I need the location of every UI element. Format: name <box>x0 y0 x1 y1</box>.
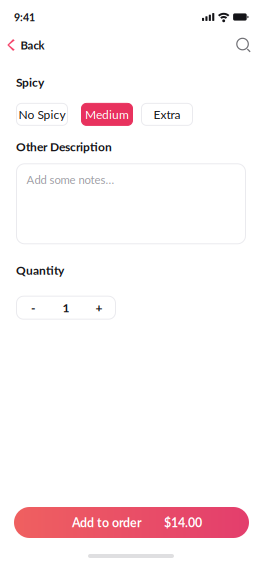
staticText: Add some notes... <box>26 173 114 186</box>
staticText: Spicy <box>16 75 44 89</box>
button[interactable]: + <box>82 296 115 319</box>
staticText: 1 <box>62 300 69 315</box>
button[interactable]: Search <box>230 34 258 56</box>
staticText: Other Description <box>16 139 112 154</box>
staticText: + <box>95 300 102 315</box>
staticText: Add to order <box>72 515 142 530</box>
staticText: $14.00 <box>164 515 202 530</box>
staticText: No Spicy <box>18 107 65 122</box>
button[interactable]: - <box>16 296 49 319</box>
button[interactable]: Add to order <box>14 507 249 538</box>
staticText: Extra <box>153 107 180 122</box>
button[interactable]: Add some notes... <box>16 164 245 244</box>
staticText: Back <box>20 38 44 52</box>
staticText: Medium <box>85 107 129 122</box>
button[interactable]: Medium <box>81 103 132 125</box>
staticText: - <box>31 300 35 315</box>
staticText: Quantity <box>16 263 64 277</box>
button[interactable]: Extra <box>141 103 192 125</box>
button[interactable]: No Spicy <box>16 103 67 125</box>
staticText: 9:41 <box>14 11 35 23</box>
button[interactable]: Back <box>0 34 54 56</box>
